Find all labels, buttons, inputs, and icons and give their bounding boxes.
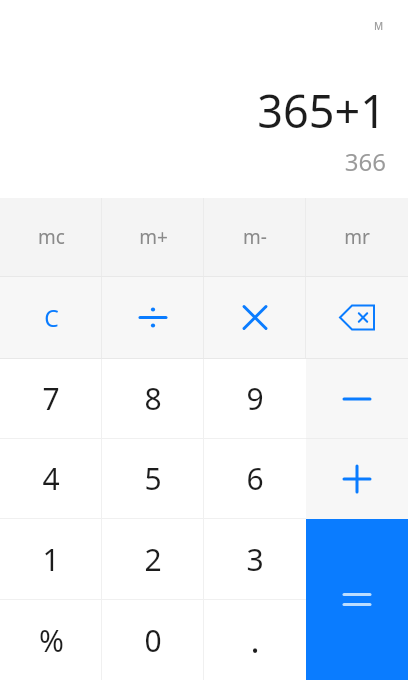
staticText: 7 (42, 378, 60, 419)
button[interactable]: 6 (204, 439, 306, 518)
button[interactable]: m+ (102, 198, 204, 276)
staticText: % (39, 620, 64, 661)
button[interactable]: mr (306, 198, 408, 276)
staticText: 6 (246, 458, 264, 499)
button[interactable]: . (204, 600, 306, 680)
button[interactable]: Backspace (306, 277, 408, 358)
button[interactable]: 4 (0, 439, 102, 518)
button[interactable]: mc (0, 198, 102, 276)
staticText: 366 (344, 145, 386, 178)
staticText: C (44, 302, 59, 333)
button[interactable]: Minus (306, 359, 408, 439)
staticText: 2 (144, 539, 162, 580)
button[interactable]: Plus (306, 439, 408, 519)
staticText: 8 (144, 378, 162, 419)
staticText: 365+1 (257, 80, 386, 141)
staticText: m- (243, 224, 267, 250)
button[interactable]: 7 (0, 359, 102, 438)
button[interactable]: 8 (102, 359, 204, 438)
button[interactable]: Multiply (204, 277, 306, 358)
staticText: m+ (139, 224, 168, 250)
button[interactable]: 3 (204, 519, 306, 599)
button[interactable]: 9 (204, 359, 306, 438)
staticText: 0 (144, 620, 162, 661)
button[interactable]: 1 (0, 519, 102, 599)
button[interactable]: 2 (102, 519, 204, 599)
staticText: mr (344, 224, 370, 250)
staticText: M (374, 19, 384, 33)
button[interactable]: % (0, 600, 102, 680)
staticText: 1 (42, 539, 60, 580)
button[interactable]: Equals (306, 519, 408, 680)
staticText: . (250, 617, 260, 663)
button[interactable]: C (0, 277, 102, 358)
staticText: mc (38, 224, 65, 250)
staticText: 9 (246, 378, 264, 419)
button[interactable]: 5 (102, 439, 204, 518)
staticText: 3 (246, 539, 264, 580)
button[interactable]: Divide (102, 277, 204, 358)
staticText: 4 (42, 458, 60, 499)
button[interactable]: m- (204, 198, 306, 276)
button[interactable]: 0 (102, 600, 204, 680)
staticText: 5 (144, 458, 162, 499)
